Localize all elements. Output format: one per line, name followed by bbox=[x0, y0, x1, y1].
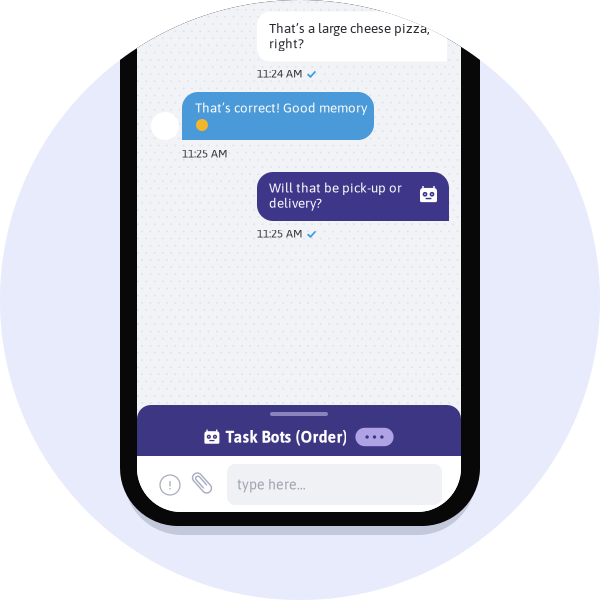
button[interactable]: Task Bots (Order) bbox=[137, 422, 461, 452]
staticText: 11:24 AM bbox=[257, 67, 303, 80]
button[interactable]: Attach file bbox=[189, 470, 215, 496]
staticText: That’s correct! Good memory bbox=[195, 100, 367, 115]
staticText: type here… bbox=[237, 476, 306, 492]
staticText: 11:25 AM bbox=[257, 227, 303, 240]
staticText: 11:25 AM bbox=[182, 147, 228, 160]
staticText: Will that be pick-up or delivery? bbox=[269, 180, 402, 211]
button[interactable]: Information bbox=[157, 472, 183, 498]
staticText: That’s a large cheese pizza, right? bbox=[269, 20, 430, 51]
staticText: Task Bots (Order) bbox=[225, 428, 347, 446]
button[interactable]: type here… bbox=[227, 464, 442, 505]
